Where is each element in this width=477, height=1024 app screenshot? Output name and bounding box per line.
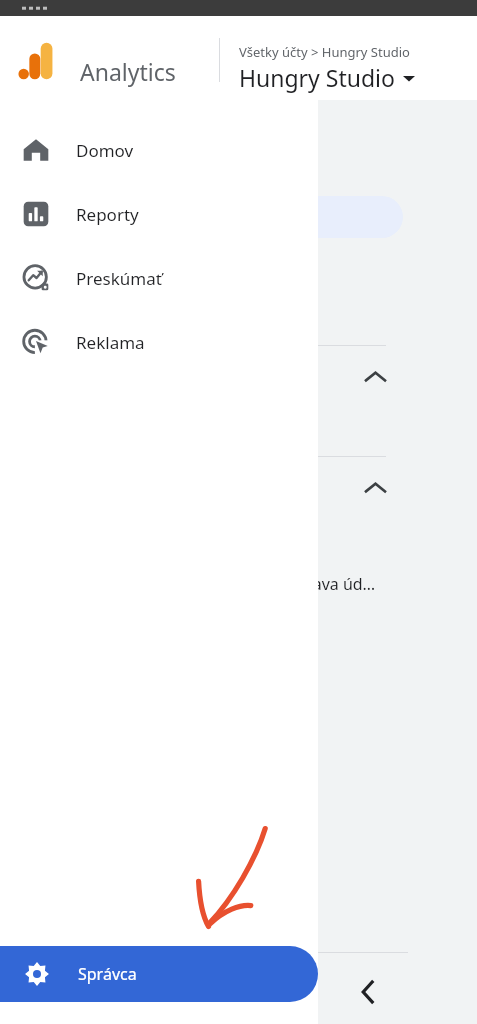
button[interactable]: Správca: [0, 946, 318, 1002]
button[interactable]: Domov: [0, 118, 318, 182]
staticText: Domov: [76, 139, 134, 162]
other: Back: [362, 982, 374, 1002]
staticText: Správca: [78, 963, 137, 985]
staticText: Reklama: [76, 331, 145, 354]
staticText: Všetky účty > Hungry Studio: [239, 43, 410, 61]
button[interactable]: Reklama: [0, 310, 318, 374]
other: Collapse: [366, 371, 385, 382]
other: Collapse: [366, 482, 385, 493]
staticText: Hungry Studio: [239, 62, 395, 93]
staticText: Analytics: [80, 56, 176, 87]
staticText: Reporty: [76, 203, 139, 226]
button[interactable]: Preskúmať: [0, 246, 318, 310]
staticText: Preskúmať: [76, 267, 162, 290]
button[interactable]: [250, 196, 403, 238]
button[interactable]: Hungry Studio: [239, 62, 415, 93]
staticText: …ava úd…: [300, 573, 376, 595]
button[interactable]: Reporty: [0, 182, 318, 246]
